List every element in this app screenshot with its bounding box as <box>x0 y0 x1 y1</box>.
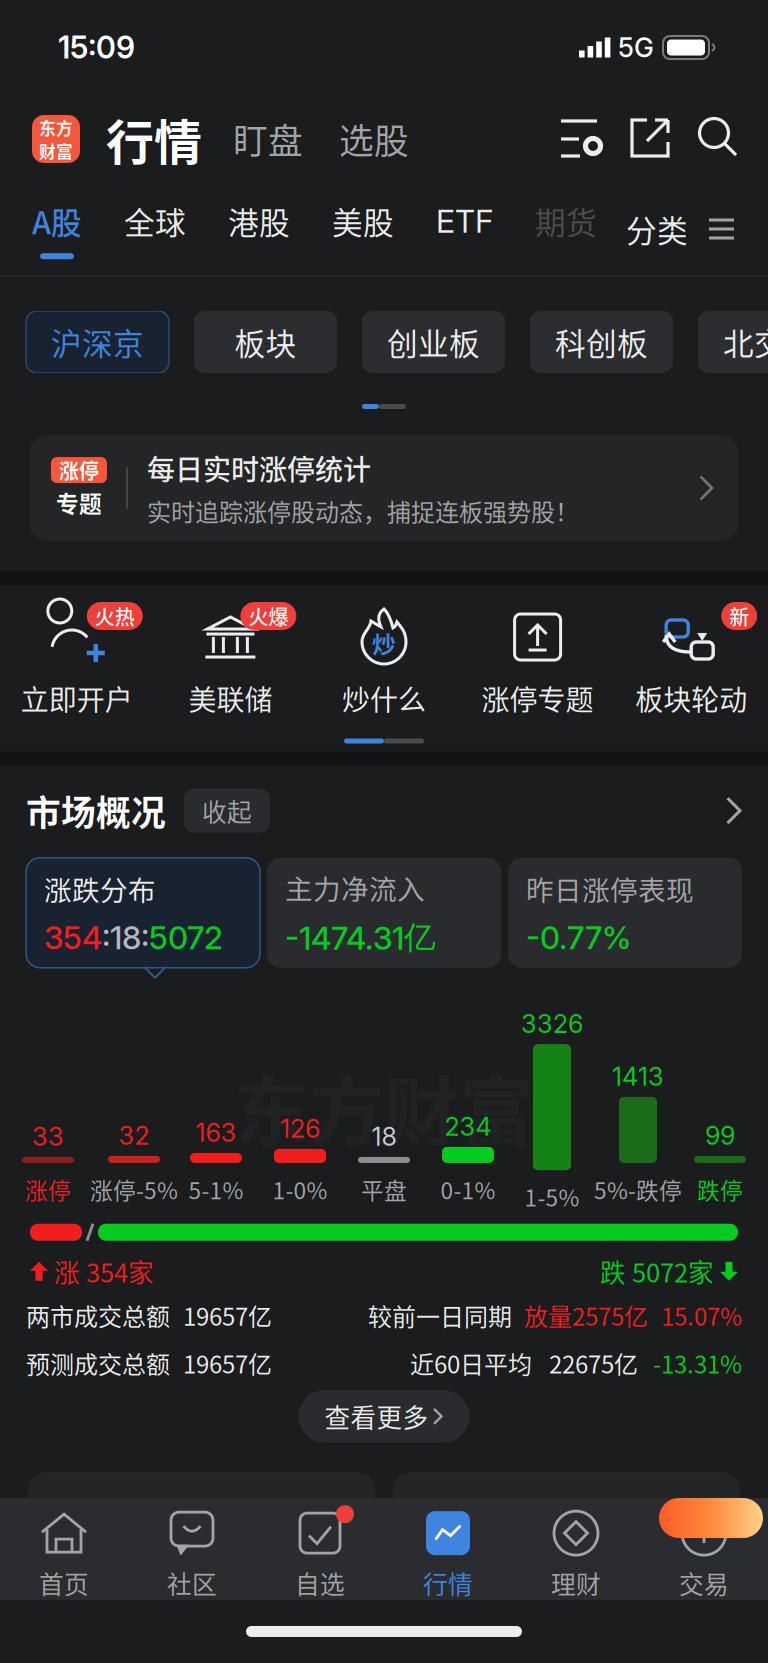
staticText: 22675亿 <box>549 1346 638 1380</box>
button[interactable]: More <box>726 797 742 825</box>
staticText: :18: <box>102 919 149 957</box>
staticText: 预测成交总额 <box>26 1346 170 1380</box>
staticText: 理财 <box>551 1565 601 1601</box>
staticText: 行情 <box>106 104 202 174</box>
staticText: 近60日平均 <box>410 1346 532 1380</box>
staticText: 最强板块 <box>415 1500 539 1544</box>
staticText: 18 <box>371 1121 396 1152</box>
staticText: 东方 <box>39 115 73 139</box>
staticText: 99 <box>705 1120 735 1151</box>
button[interactable]: 社区 <box>128 1507 256 1601</box>
staticText: 放量2575亿 <box>524 1298 648 1333</box>
button[interactable]: 港股 <box>207 183 311 275</box>
staticText: 163 <box>195 1117 236 1148</box>
button[interactable]: 板块 <box>194 311 337 373</box>
button[interactable]: 炒 <box>307 609 461 718</box>
staticText: 选股 <box>339 114 409 164</box>
staticText: 分类 <box>626 207 688 251</box>
staticText: 新 <box>729 601 749 630</box>
button[interactable]: 最强板块 <box>393 1472 740 1630</box>
staticText: 较前一日同期 <box>368 1298 512 1333</box>
staticText: 19657亿 <box>183 1346 272 1380</box>
button[interactable]: 今日主线 <box>28 1472 375 1630</box>
staticText: 火热 <box>95 601 135 630</box>
staticText: 财富 <box>39 138 73 163</box>
staticText: 实时追踪涨停股动态，捕捉连板强势股！ <box>147 493 579 528</box>
button[interactable]: 涨跌分布 <box>26 858 260 968</box>
button[interactable]: 科创板 <box>530 311 673 373</box>
button[interactable]: Trade promotion <box>659 1498 763 1538</box>
button[interactable]: 首页 <box>0 1507 128 1601</box>
staticText: 今日主线 <box>50 1500 174 1544</box>
staticText: ETF <box>436 202 493 240</box>
button[interactable]: 分类 <box>618 183 696 275</box>
staticText: 北交所 <box>723 320 768 364</box>
staticText: 炒什么 <box>342 678 426 718</box>
button[interactable]: 涨停专题 <box>461 609 614 718</box>
staticText: 收起 <box>202 793 252 828</box>
button[interactable]: A股 <box>11 183 103 275</box>
button[interactable]: 全球 <box>103 183 207 275</box>
button[interactable]: 收起 <box>184 789 270 833</box>
staticText: 19657亿 <box>183 1298 272 1333</box>
staticText: 15:09 <box>58 29 135 66</box>
button[interactable]: 北交所 <box>698 311 768 373</box>
staticText: 东方财富 <box>234 1053 534 1161</box>
button[interactable]: Screener settings <box>560 118 604 160</box>
staticText: 沪深京 <box>51 320 144 364</box>
button[interactable]: More categories <box>696 183 747 275</box>
button[interactable]: ETF <box>415 183 514 275</box>
staticText: 港股 <box>228 199 290 243</box>
button[interactable]: 盯盘 <box>220 104 316 174</box>
staticText: 5072 <box>149 919 223 957</box>
staticText: 32 <box>118 1120 149 1151</box>
staticText: 0-1% <box>440 1173 495 1206</box>
staticText: 科创板 <box>555 320 648 364</box>
staticText: 涨停 <box>25 1173 71 1206</box>
button[interactable]: 涨停 <box>0 435 768 541</box>
button[interactable]: 沪深京 <box>26 311 169 373</box>
button[interactable]: 查看更多 <box>298 1390 469 1442</box>
button[interactable]: 创业板 <box>362 311 505 373</box>
button[interactable]: Share <box>630 118 672 160</box>
staticText: 涨 354家 <box>54 1253 154 1290</box>
staticText: 15.07% <box>661 1298 742 1333</box>
button[interactable]: 昨日涨停表现 <box>508 858 742 968</box>
staticText: 行情 <box>423 1565 473 1601</box>
button[interactable]: 理财 <box>512 1507 640 1601</box>
staticText: -1474.31亿 <box>285 918 436 958</box>
button[interactable]: Search <box>696 116 742 162</box>
button[interactable]: 美股 <box>311 183 415 275</box>
staticText: 查看更多 <box>324 1398 428 1435</box>
button[interactable]: 主力净流入 <box>267 858 501 968</box>
staticText: 创业板 <box>387 320 480 364</box>
button[interactable]: 行情 <box>384 1507 512 1601</box>
button[interactable]: 自选 <box>256 1507 384 1601</box>
staticText: 涨跌分布 <box>44 869 156 909</box>
staticText: 交易 <box>679 1565 729 1601</box>
staticText: 社区 <box>167 1565 217 1601</box>
staticText: 涨停 <box>59 456 99 485</box>
staticText: 主力净流入 <box>285 868 425 908</box>
staticText: 涨停-5% <box>90 1173 178 1206</box>
staticText: 美联储 <box>188 678 272 718</box>
staticText: 市场概况 <box>26 785 166 836</box>
staticText: 全球 <box>124 199 186 243</box>
staticText: 5G <box>618 31 654 64</box>
staticText: 自选 <box>295 1565 345 1601</box>
staticText: 专题 <box>56 486 102 519</box>
staticText: 两市成交总额 <box>26 1298 170 1333</box>
button[interactable]: 交易 <box>640 1507 768 1601</box>
button[interactable]: 选股 <box>326 104 422 174</box>
staticText: A股 <box>32 199 82 243</box>
staticText: 3326 <box>521 1008 583 1039</box>
button[interactable]: 火爆 <box>154 609 307 718</box>
staticText: 平盘 <box>361 1173 407 1206</box>
button[interactable]: 火热 <box>0 609 154 718</box>
button[interactable]: 新 <box>614 609 768 718</box>
staticText: 期货 <box>535 199 597 243</box>
staticText: 234 <box>444 1111 491 1142</box>
staticText: 板块轮动 <box>635 678 747 718</box>
staticText: 美股 <box>332 199 394 243</box>
button[interactable]: 期货 <box>514 183 618 275</box>
